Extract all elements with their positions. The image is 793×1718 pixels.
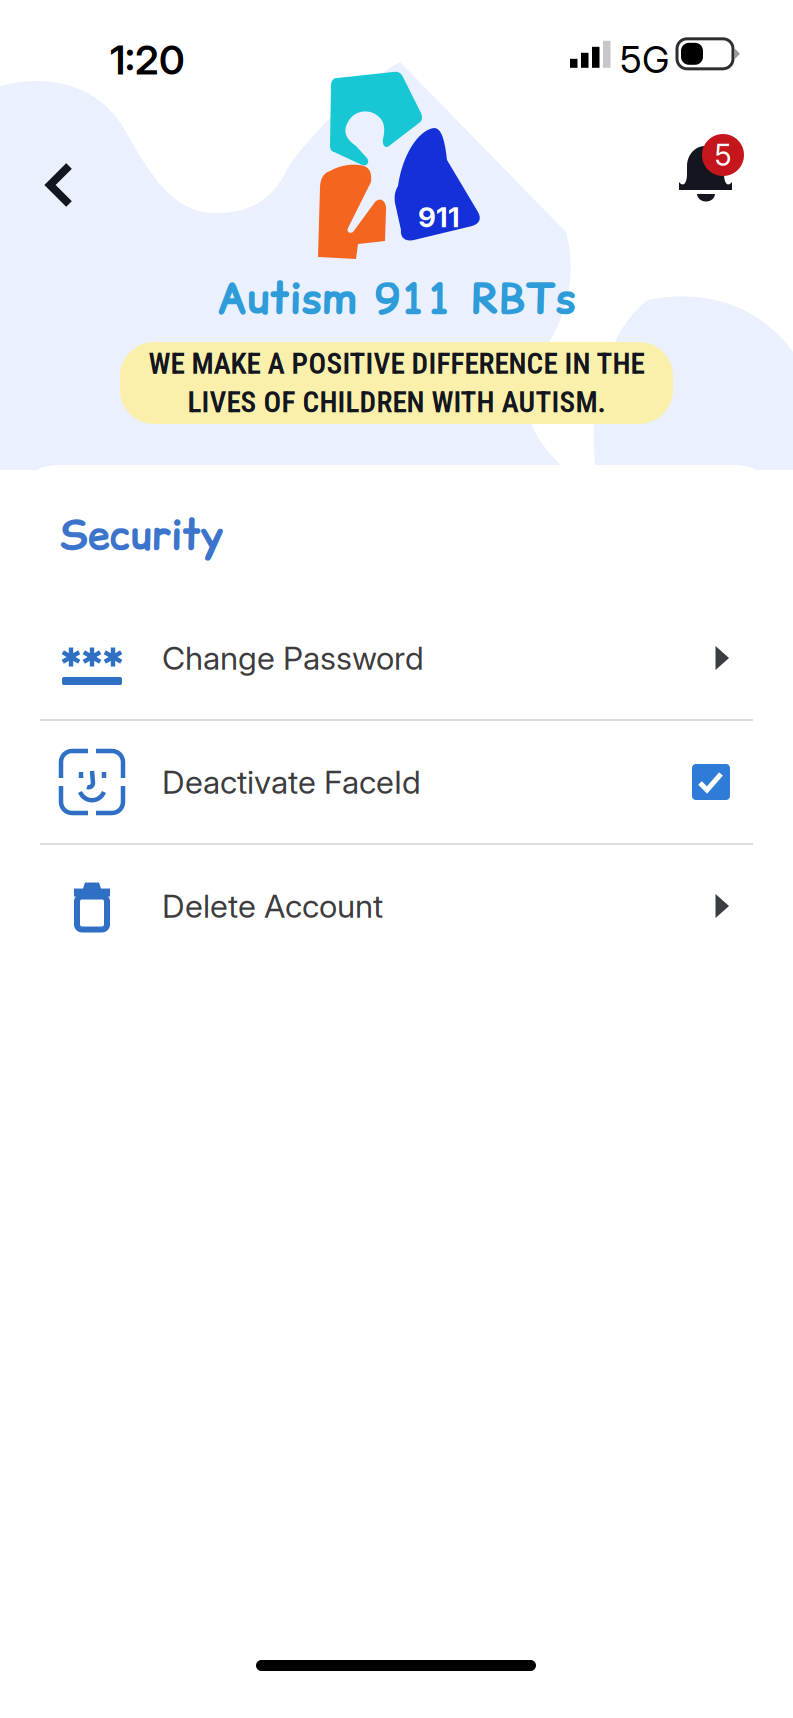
staticText: WE MAKE A POSITIVE DIFFERENCE IN THE xyxy=(148,347,644,381)
staticText: 1:20 xyxy=(110,36,185,84)
staticText: Delete Account xyxy=(162,887,383,925)
staticText: 5 xyxy=(714,137,731,173)
button[interactable]: Notifications xyxy=(660,132,754,214)
staticText: 911 xyxy=(418,200,460,234)
staticText: Autism 911 RBTs xyxy=(216,268,576,328)
staticText: Change Password xyxy=(162,639,424,677)
staticText: Deactivate FaceId xyxy=(162,763,421,801)
staticText: 5G xyxy=(620,37,669,82)
button[interactable]: Change Password xyxy=(10,597,783,719)
staticText: Security xyxy=(60,507,223,563)
staticText: LIVES OF CHILDREN WITH AUTISM. xyxy=(187,385,605,419)
button[interactable]: Back xyxy=(28,146,92,224)
button[interactable]: Deactivate FaceId xyxy=(10,721,783,843)
button[interactable]: Delete Account xyxy=(10,845,783,967)
